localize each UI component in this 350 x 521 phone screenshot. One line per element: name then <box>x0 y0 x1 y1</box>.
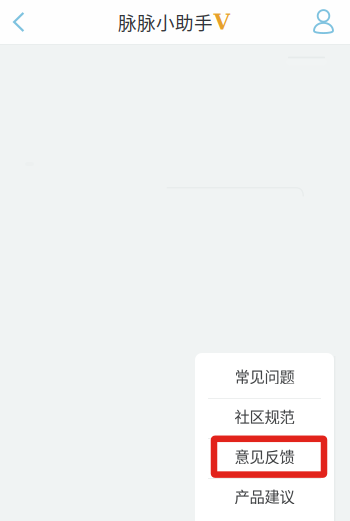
staticText: 常见问题 <box>234 365 294 387</box>
staticText: 产品建议 <box>234 485 294 507</box>
staticText: 社区规范 <box>234 405 294 427</box>
staticText: V <box>213 9 230 35</box>
button[interactable]: Profile <box>294 0 350 44</box>
button[interactable]: 常见问题 <box>195 358 334 398</box>
staticText: 意见反馈 <box>234 445 294 467</box>
button[interactable]: 产品建议 <box>195 478 334 518</box>
button[interactable]: 意见反馈 <box>195 438 334 478</box>
button[interactable]: 社区规范 <box>195 398 334 438</box>
staticText: 脉脉小助手 <box>118 9 213 35</box>
button[interactable]: Back <box>0 0 46 44</box>
